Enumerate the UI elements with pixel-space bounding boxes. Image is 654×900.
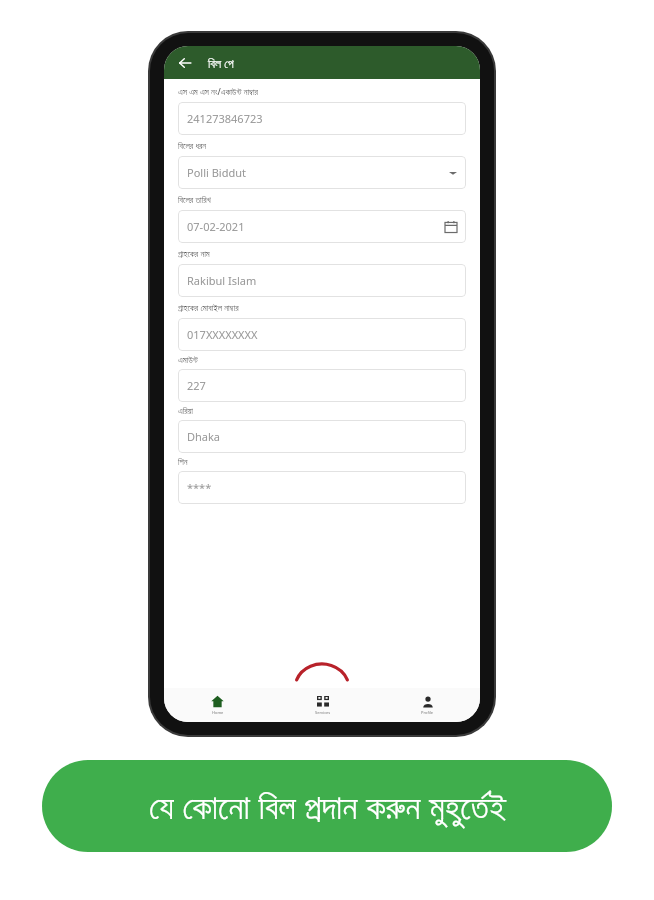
staticText: Services: [315, 710, 331, 715]
button[interactable]: 07-02-2021: [178, 210, 466, 243]
staticText: বিল পে: [208, 55, 234, 71]
staticText: 241273846723: [187, 111, 263, 126]
button[interactable]: Rakibul Islam: [178, 264, 466, 297]
staticText: Dhaka: [187, 429, 221, 444]
button[interactable]: Home: [164, 688, 270, 722]
button[interactable]: 227: [178, 369, 466, 402]
button[interactable]: যে কোনো বিল প্রদান করুন মুহুর্তেই: [42, 760, 612, 852]
button[interactable]: 241273846723: [178, 102, 466, 135]
staticText: এস এম এস নং/একাউন্ট নাম্বার: [178, 86, 258, 98]
staticText: 017XXXXXXXX: [187, 327, 258, 342]
staticText: যে কোনো বিল প্রদান করুন মুহুর্তেই: [149, 783, 506, 829]
staticText: পিন: [178, 458, 188, 467]
staticText: বিলের তারিখ: [178, 194, 211, 206]
button[interactable]: Back: [174, 52, 196, 74]
button[interactable]: Dhaka: [178, 420, 466, 453]
staticText: বিলের ধরন: [178, 140, 207, 152]
staticText: 07-02-2021: [187, 219, 245, 234]
staticText: Home: [212, 710, 224, 715]
staticText: Rakibul Islam: [187, 273, 257, 288]
button[interactable]: Profile: [375, 688, 480, 722]
staticText: গ্রাহকের নাম: [178, 248, 210, 260]
button[interactable]: ****: [178, 471, 466, 504]
button[interactable]: Polli Biddut: [178, 156, 466, 189]
staticText: Polli Biddut: [187, 165, 246, 180]
staticText: এরিয়া: [178, 407, 193, 416]
staticText: ****: [187, 480, 212, 495]
button[interactable]: 017XXXXXXXX: [178, 318, 466, 351]
staticText: গ্রাহকের মোবাইল নাম্বার: [178, 302, 239, 314]
staticText: Profile: [421, 710, 434, 715]
staticText: এমাউন্ট: [178, 356, 198, 365]
button[interactable]: Services: [270, 688, 375, 722]
staticText: 227: [187, 378, 206, 393]
